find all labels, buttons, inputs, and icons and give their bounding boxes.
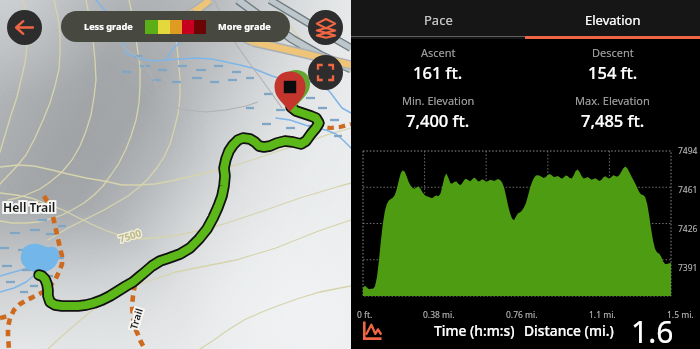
staticText: 0 ft.	[357, 309, 373, 321]
staticText: Time (h:m:s)	[434, 321, 515, 340]
staticText: Ascent	[421, 45, 456, 60]
staticText: Max. Elevation	[575, 93, 650, 108]
button[interactable]: Fullscreen	[308, 55, 343, 90]
button[interactable]: Map layers	[308, 10, 343, 45]
staticText: Min. Elevation	[402, 93, 475, 108]
staticText: 1.1 mi.	[589, 309, 616, 321]
staticText: Less grade	[84, 20, 133, 33]
button[interactable]: Pace	[351, 0, 525, 39]
button[interactable]: Elevation	[525, 0, 700, 39]
staticText: 7500	[117, 226, 143, 246]
staticText: 1.5 mi.	[667, 309, 694, 321]
staticText: 7426	[678, 223, 698, 235]
staticText: Distance (mi.)	[524, 321, 614, 340]
staticText: 7391	[678, 262, 698, 274]
staticText: 0.38 mi.	[423, 309, 455, 321]
staticText: Hell Trail	[3, 199, 56, 215]
button[interactable]: Chart	[358, 316, 386, 344]
staticText: 154 ft.	[588, 61, 638, 83]
staticText: Trail	[126, 306, 146, 331]
staticText: 0.76 mi.	[506, 309, 538, 321]
button[interactable]: Back	[7, 10, 42, 45]
staticText: 7461	[678, 184, 698, 196]
staticText: Hell Trail	[3, 199, 56, 215]
staticText: 7494	[678, 145, 698, 157]
staticText: Descent	[592, 45, 634, 60]
button[interactable]: Less grade	[61, 11, 290, 42]
staticText: 1.6	[631, 311, 674, 347]
staticText: Elevation	[585, 11, 641, 29]
staticText: Trail	[126, 306, 146, 331]
staticText: Pace	[424, 11, 453, 29]
staticText: 161 ft.	[413, 61, 463, 83]
staticText: 7500	[117, 226, 143, 246]
staticText: More grade	[218, 20, 271, 33]
staticText: 7,485 ft.	[581, 109, 645, 131]
staticText: 7,400 ft.	[406, 109, 470, 131]
